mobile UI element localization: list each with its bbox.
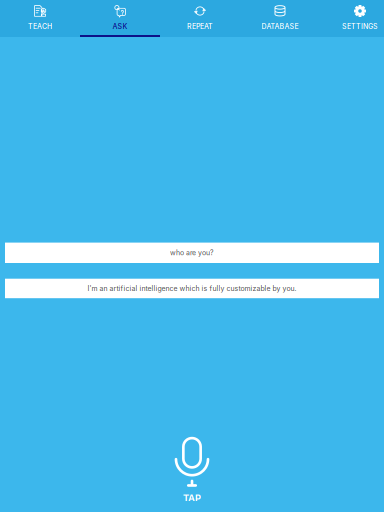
staticText: ASK [112, 22, 127, 31]
staticText: who are you? [170, 249, 214, 257]
button[interactable]: REPEAT [160, 0, 240, 37]
staticText: DATABASE [261, 22, 298, 31]
staticText: I'm an artificial intelligence which is … [87, 284, 296, 293]
staticText: TEACH [28, 22, 52, 31]
button[interactable]: DATABASE [240, 0, 320, 37]
button[interactable]: ASK [80, 0, 160, 37]
button[interactable]: TEACH [0, 0, 80, 37]
staticText: REPEAT [187, 22, 213, 31]
button[interactable]: TAP [132, 437, 252, 504]
staticText: SETTINGS [342, 22, 378, 31]
staticText: TAP [183, 492, 201, 504]
button[interactable]: SETTINGS [320, 0, 384, 37]
